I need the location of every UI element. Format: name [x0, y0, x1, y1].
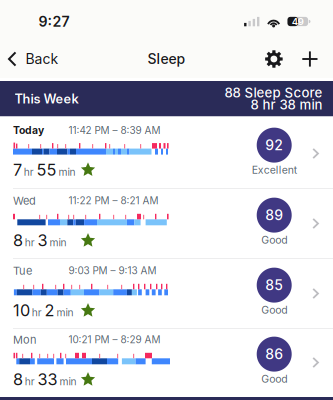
staticText: 86 [265, 346, 283, 363]
button[interactable]: Mon [0, 329, 333, 397]
staticText: Mon [13, 333, 36, 346]
staticText: 33 [38, 370, 58, 389]
staticText: min [56, 306, 73, 319]
button[interactable]: Add [296, 45, 323, 73]
staticText: 9:27 [38, 13, 69, 30]
staticText: 92 [265, 137, 283, 154]
staticText: Excellent [252, 164, 297, 176]
staticText: Tue [13, 264, 32, 277]
staticText: 88 Sleep Score [224, 85, 322, 101]
staticText: 3 [38, 231, 48, 250]
staticText: 8 [13, 370, 23, 389]
staticText: hr [24, 166, 34, 178]
staticText: min [58, 166, 75, 178]
staticText: This Week [14, 91, 78, 106]
staticText: hr [32, 306, 42, 319]
staticText: hr [25, 236, 35, 249]
staticText: 55 [37, 160, 57, 180]
staticText: 85 [265, 277, 283, 294]
staticText: 10 [13, 301, 30, 320]
button[interactable]: Wed [0, 189, 333, 259]
staticText: 11:22 PM – 8:21 AM [68, 195, 158, 207]
staticText: 11:42 PM – 8:39 AM [68, 124, 160, 136]
staticText: min [49, 236, 66, 249]
button[interactable]: Back [0, 50, 58, 67]
staticText: Wed [13, 194, 36, 207]
staticText: 10:21 PM – 8:29 AM [68, 334, 160, 346]
staticText: min [59, 375, 76, 388]
staticText: Sleep [147, 50, 185, 67]
staticText: 8 hr 38 min [250, 97, 322, 113]
staticText: Good [261, 304, 287, 316]
staticText: Good [261, 234, 287, 246]
button[interactable]: Tue [0, 259, 333, 329]
staticText: Back [25, 50, 58, 67]
staticText: 8 [13, 231, 23, 250]
staticText: 7 [13, 160, 22, 180]
button[interactable]: Settings [259, 44, 289, 74]
button[interactable]: Today [0, 119, 333, 189]
staticText: Today [13, 124, 44, 137]
staticText: 9:03 PM – 9:13 AM [68, 265, 156, 277]
staticText: Good [261, 373, 287, 385]
staticText: 49 [292, 16, 304, 27]
staticText: hr [25, 375, 35, 388]
staticText: 2 [45, 301, 55, 320]
staticText: 89 [265, 207, 283, 224]
